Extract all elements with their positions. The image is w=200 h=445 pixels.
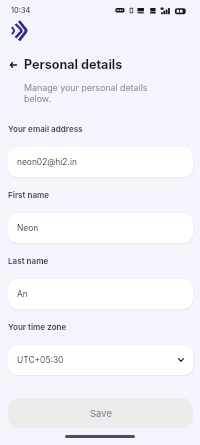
staticText: UTC+05:30 [17,355,64,365]
staticText: Your email address [8,124,83,134]
staticText: First name [8,190,50,200]
button[interactable]: Save [8,398,193,428]
staticText: Manage your personal details below. [24,82,148,104]
staticText: 10:34 [11,6,31,15]
staticText: Save [90,408,112,419]
staticText: Last name [8,256,49,266]
button[interactable]: Back [6,57,21,72]
staticText: Neon [17,223,39,233]
staticText: Your time zone [8,322,67,332]
staticText: Personal details [24,57,123,72]
staticText: neon02@hi2.in [17,157,77,167]
staticText: An [17,289,28,299]
button[interactable]: An [8,279,193,309]
button[interactable]: UTC+05:30 [8,345,193,375]
button[interactable]: Neon [8,213,193,243]
button[interactable]: neon02@hi2.in [8,147,193,177]
